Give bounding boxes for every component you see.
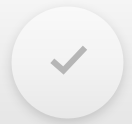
button[interactable]: Done	[11, 6, 123, 118]
